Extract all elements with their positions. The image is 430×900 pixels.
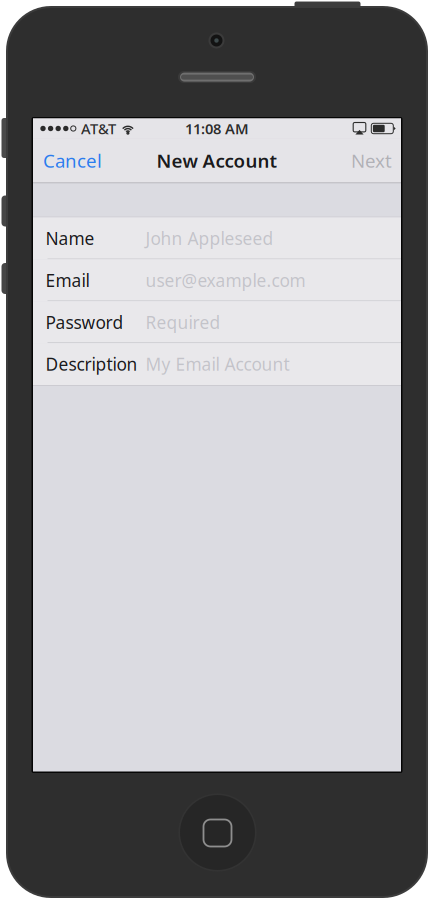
staticText: Email — [45, 269, 89, 292]
staticText: Required — [145, 311, 220, 334]
staticText: Next — [351, 148, 392, 173]
staticText: My Email Account — [145, 352, 289, 375]
staticText: AT&T — [81, 119, 116, 138]
staticText: Cancel — [43, 148, 102, 173]
staticText: Password — [45, 311, 123, 334]
staticText: Name — [45, 227, 94, 250]
staticText: New Account — [156, 148, 277, 173]
staticText: John Appleseed — [145, 227, 273, 250]
button[interactable]: Password — [33, 301, 401, 343]
staticText: Description — [45, 352, 137, 375]
button[interactable]: Name — [33, 217, 401, 259]
button[interactable]: Email — [33, 259, 401, 301]
staticText: user@example.com — [145, 269, 305, 292]
button[interactable]: Next — [342, 139, 401, 182]
button[interactable]: Cancel — [34, 139, 111, 182]
staticText: 11:08 AM — [185, 119, 249, 138]
button[interactable]: Description — [33, 343, 401, 385]
